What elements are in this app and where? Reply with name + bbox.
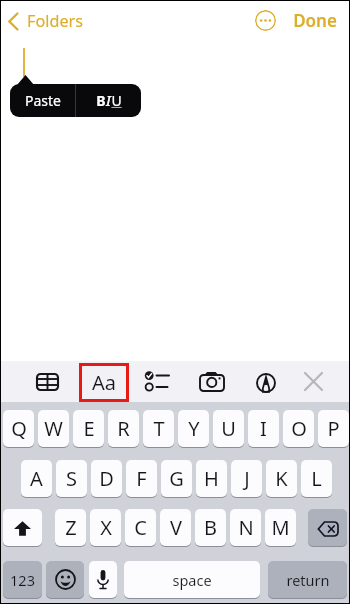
staticText: Y [188,415,200,442]
button[interactable]: 123 [3,561,42,598]
button[interactable]: Dictate [89,561,117,598]
button[interactable]: Q [3,410,34,447]
staticText: B [204,514,217,541]
button[interactable]: H [196,460,227,497]
staticText: B [96,91,106,110]
button[interactable]: E [73,410,104,447]
staticText: Done [293,9,337,32]
staticText: M [271,514,290,541]
button[interactable]: C [125,509,156,546]
button[interactable]: Shift [3,509,42,546]
button[interactable]: Emoji [46,561,84,598]
button[interactable]: Folders [8,10,83,32]
staticText: P [327,415,340,442]
button[interactable]: B [76,84,141,117]
staticText: S [66,465,77,492]
button[interactable]: K [266,460,297,497]
button[interactable]: F [126,460,157,497]
button[interactable]: Camera [197,367,229,395]
staticText: space [172,570,212,590]
staticText: H [204,465,219,492]
button[interactable]: D [91,460,122,497]
staticText: Folders [27,10,83,32]
staticText: X [100,514,112,541]
button[interactable]: Paste [10,84,75,117]
staticText: I [106,91,111,110]
button[interactable]: More options [255,10,276,31]
staticText: N [238,514,254,541]
staticText: A [30,465,43,492]
staticText: E [83,415,95,442]
staticText: G [169,465,184,492]
button[interactable]: X [90,509,121,546]
button[interactable]: Aa [79,363,129,402]
staticText: O [291,415,307,442]
staticText: I [260,415,267,442]
button[interactable]: S [56,460,87,497]
staticText: W [44,415,63,442]
staticText: U [221,415,236,442]
button[interactable]: O [283,410,314,447]
staticText: Q [11,415,27,442]
staticText: R [117,415,130,442]
staticText: L [311,465,322,492]
staticText: C [134,514,147,541]
staticText: J [244,465,250,492]
button[interactable]: B [195,509,226,546]
button[interactable]: return [268,561,347,598]
button[interactable]: W [38,410,69,447]
button[interactable]: Markup [254,371,278,395]
button[interactable]: A [21,460,52,497]
staticText: K [275,465,288,492]
staticText: V [170,514,182,541]
button[interactable]: space [124,561,260,598]
staticText: return [286,570,330,590]
button[interactable]: P [318,410,349,447]
staticText: U [111,91,122,110]
button[interactable]: L [301,460,332,497]
button[interactable]: Checklist [139,369,173,394]
button[interactable]: Close keyboard [301,369,326,394]
button[interactable]: N [230,509,261,546]
button[interactable]: Z [55,509,86,546]
staticText: Z [65,514,77,541]
button[interactable]: T [143,410,174,447]
button[interactable]: R [108,410,139,447]
staticText: D [99,465,114,492]
button[interactable]: Y [178,410,209,447]
button[interactable]: I [248,410,279,447]
staticText: 123 [10,570,35,590]
button[interactable]: G [161,460,192,497]
button[interactable]: Done [293,9,337,32]
button[interactable]: M [265,509,296,546]
button[interactable]: Table [32,369,63,394]
staticText: Aa [92,369,116,396]
staticText: T [153,415,165,442]
staticText: F [136,465,147,492]
button[interactable]: U [213,410,244,447]
button[interactable]: V [160,509,191,546]
button[interactable]: Backspace [308,509,347,546]
staticText: Paste [25,91,61,110]
button[interactable]: J [231,460,262,497]
